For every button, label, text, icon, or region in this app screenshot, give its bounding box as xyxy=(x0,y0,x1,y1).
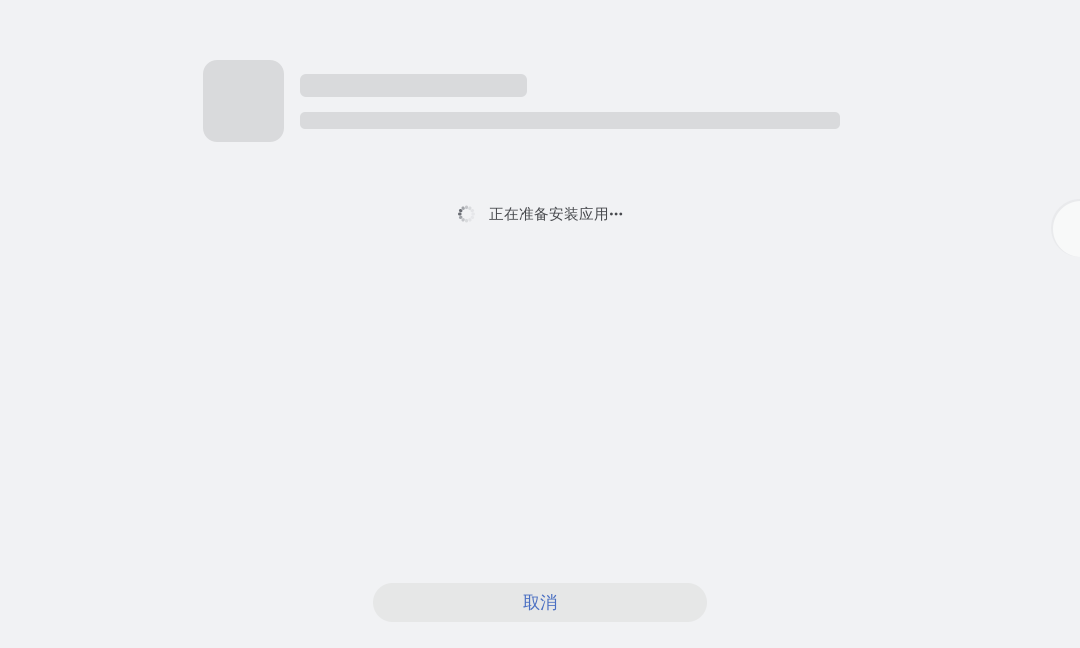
button[interactable]: 取消 xyxy=(373,583,707,622)
staticText: 取消 xyxy=(523,592,557,613)
staticText: 正在准备安装应用 xyxy=(489,205,609,223)
